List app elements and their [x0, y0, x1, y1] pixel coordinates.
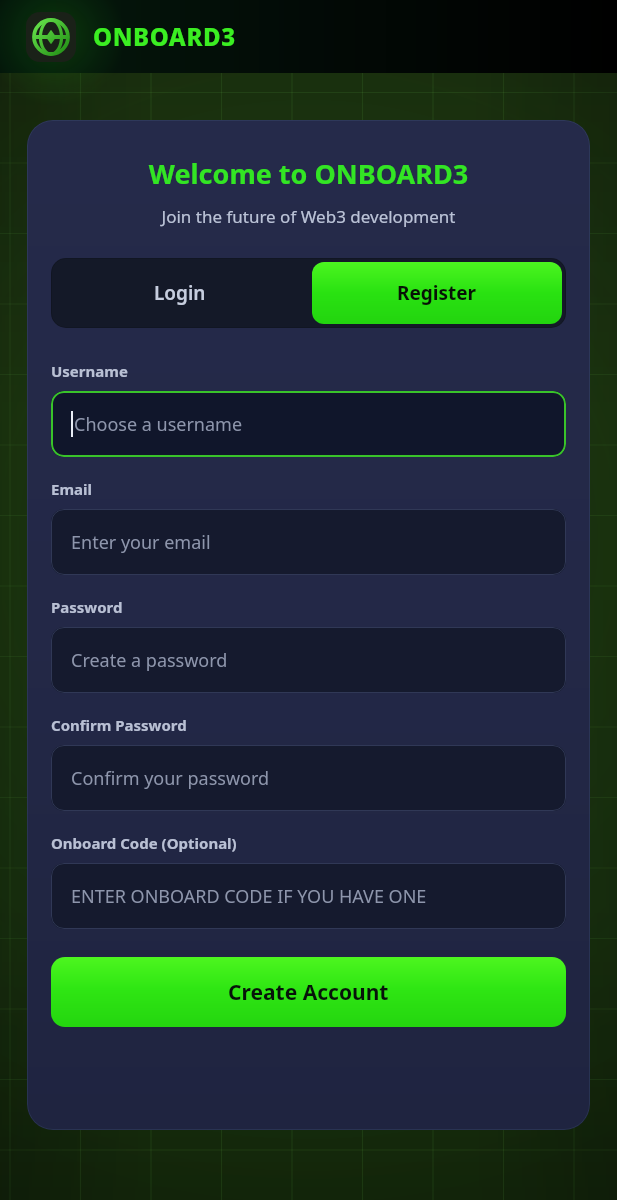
- other: Onboard3 logo: [26, 12, 76, 62]
- staticText: Confirm your password: [71, 766, 270, 791]
- staticText: Login: [154, 280, 206, 306]
- staticText: Onboard Code (Optional): [51, 833, 237, 853]
- button[interactable]: Login: [51, 258, 308, 328]
- staticText: Confirm Password: [51, 715, 187, 735]
- staticText: Enter your email: [71, 530, 211, 555]
- button[interactable]: Register: [312, 262, 562, 324]
- staticText: Create Account: [228, 978, 389, 1007]
- staticText: Email: [51, 479, 92, 499]
- staticText: Join the future of Web3 development: [51, 205, 566, 228]
- staticText: Username: [51, 361, 128, 381]
- staticText: Register: [397, 280, 477, 306]
- staticText: Password: [51, 597, 123, 617]
- button[interactable]: ENTER ONBOARD CODE IF YOU HAVE ONE: [51, 863, 566, 929]
- button[interactable]: Confirm your password: [51, 745, 566, 811]
- staticText: ONBOARD3: [93, 20, 236, 53]
- button[interactable]: Create a password: [51, 627, 566, 693]
- button[interactable]: Enter your email: [51, 509, 566, 575]
- staticText: Choose a username: [74, 412, 243, 437]
- staticText: ENTER ONBOARD CODE IF YOU HAVE ONE: [71, 884, 427, 909]
- staticText: Welcome to ONBOARD3: [51, 155, 566, 192]
- button[interactable]: Choose a username: [51, 391, 566, 457]
- button[interactable]: Create Account: [51, 957, 566, 1027]
- staticText: Create a password: [71, 648, 228, 673]
